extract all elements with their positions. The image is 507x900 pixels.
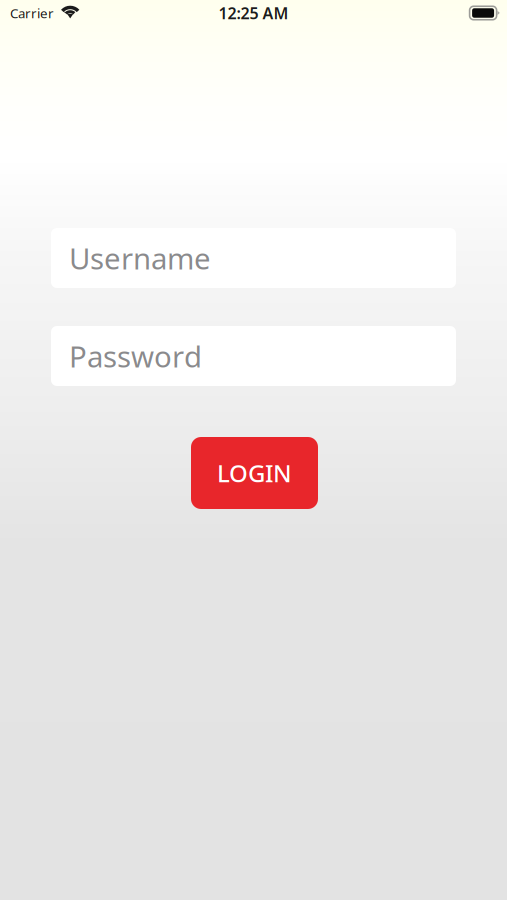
staticText: 12:25 AM xyxy=(218,2,288,24)
button[interactable]: LOGIN xyxy=(191,437,318,509)
staticText: Username xyxy=(69,238,211,277)
staticText: LOGIN xyxy=(217,457,292,489)
button[interactable]: Password xyxy=(51,326,456,386)
button[interactable]: Username xyxy=(51,228,456,288)
staticText: Carrier xyxy=(10,4,54,22)
staticText: Password xyxy=(69,336,202,375)
